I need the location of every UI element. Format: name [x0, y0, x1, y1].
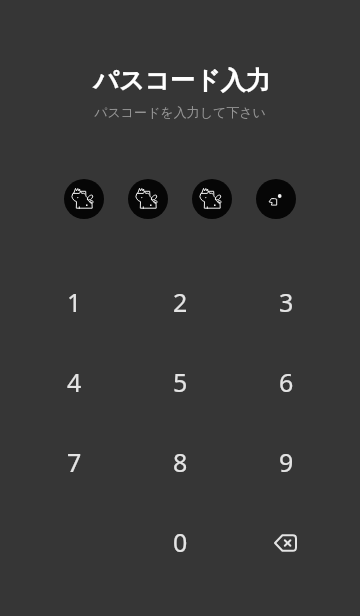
button[interactable]: 4	[21, 342, 127, 422]
staticText: 2	[173, 285, 188, 319]
staticText: 6	[279, 365, 294, 399]
staticText: 4	[67, 365, 82, 399]
staticText: 0	[173, 525, 188, 559]
staticText: 5	[173, 365, 188, 399]
staticText: 1	[67, 285, 82, 319]
button[interactable]: 2	[127, 262, 233, 342]
staticText: 3	[279, 285, 294, 319]
button[interactable]: 0	[127, 502, 233, 582]
staticText: 7	[67, 445, 82, 479]
button[interactable]: 8	[127, 422, 233, 502]
staticText: 9	[279, 445, 294, 479]
staticText: 8	[173, 445, 188, 479]
button[interactable]: 7	[21, 422, 127, 502]
button[interactable]: 3	[233, 262, 339, 342]
button[interactable]: 5	[127, 342, 233, 422]
staticText: パスコードを入力して下さい	[94, 104, 266, 120]
button[interactable]: 9	[233, 422, 339, 502]
button[interactable]: Delete	[233, 502, 339, 582]
button[interactable]: 6	[233, 342, 339, 422]
button[interactable]: 1	[21, 262, 127, 342]
staticText: パスコード入力	[93, 65, 271, 96]
other: Delete	[274, 533, 297, 553]
